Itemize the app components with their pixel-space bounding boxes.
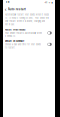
staticText: only restart when it is locked, charging…	[5, 20, 45, 22]
staticText: not in use.	[5, 23, 15, 26]
staticText: Automatically restart your device when i…	[5, 14, 49, 16]
staticText: Restart when needed	[5, 28, 25, 31]
button[interactable]: Restart when needed	[3, 28, 55, 37]
staticText: Your device restarts automatically when	[5, 32, 42, 34]
staticText: ‹	[5, 6, 7, 12]
staticText: to, to keep it running its best. Your de…	[5, 17, 48, 19]
button[interactable]: Restart on schedule	[3, 40, 55, 49]
staticText: •ıl ᯤ ▮	[44, 1, 52, 4]
staticText: 9:41	[5, 1, 9, 4]
button[interactable]: Back	[5, 6, 7, 12]
staticText: to restart.	[5, 47, 16, 49]
staticText: it needs to.	[5, 35, 16, 37]
staticText: Auto restart	[8, 7, 26, 11]
staticText: Restart on schedule	[5, 40, 24, 42]
staticText: Choose a day and time for your device	[5, 43, 41, 46]
